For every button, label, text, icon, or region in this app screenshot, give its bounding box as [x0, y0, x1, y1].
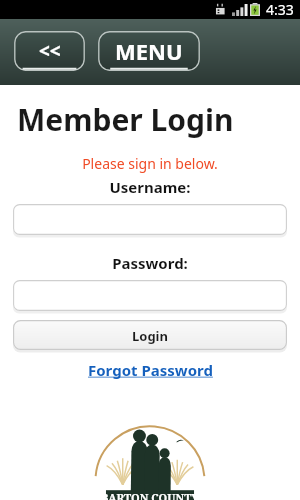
button[interactable]: Forgot Password — [0, 360, 300, 380]
button[interactable]: Back — [14, 31, 85, 71]
staticText: MENU — [115, 36, 183, 66]
staticText: Username: — [0, 177, 300, 197]
button[interactable] — [13, 280, 287, 312]
button[interactable] — [13, 204, 287, 236]
staticText: Password: — [0, 253, 300, 273]
staticText: Member Login — [17, 99, 234, 140]
button[interactable]: Login — [13, 320, 287, 351]
staticText: 4:33 — [266, 0, 294, 19]
button[interactable]: MENU — [98, 31, 200, 71]
staticText: Login — [132, 327, 168, 345]
staticText: Forgot Password — [88, 360, 213, 380]
staticText: Please sign in below. — [0, 154, 300, 173]
staticText: BARTON COUNTY — [101, 490, 199, 500]
staticText: << — [39, 38, 61, 64]
